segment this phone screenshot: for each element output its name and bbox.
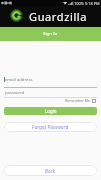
staticText: 100% 5:18 PM [74,1,100,6]
staticText: Sign In [43,31,58,37]
staticText: Login [45,108,57,114]
staticText: email address [5,77,33,83]
button[interactable]: Forgot Password [4,122,97,132]
staticText: Remember Me [65,98,90,103]
staticText: Guardzilla [29,9,88,24]
staticText: password [5,90,24,96]
button[interactable]: Login [4,107,97,115]
button[interactable]: Back [4,165,97,176]
staticText: Forgot Password [32,124,69,130]
staticText: Back [45,168,56,174]
